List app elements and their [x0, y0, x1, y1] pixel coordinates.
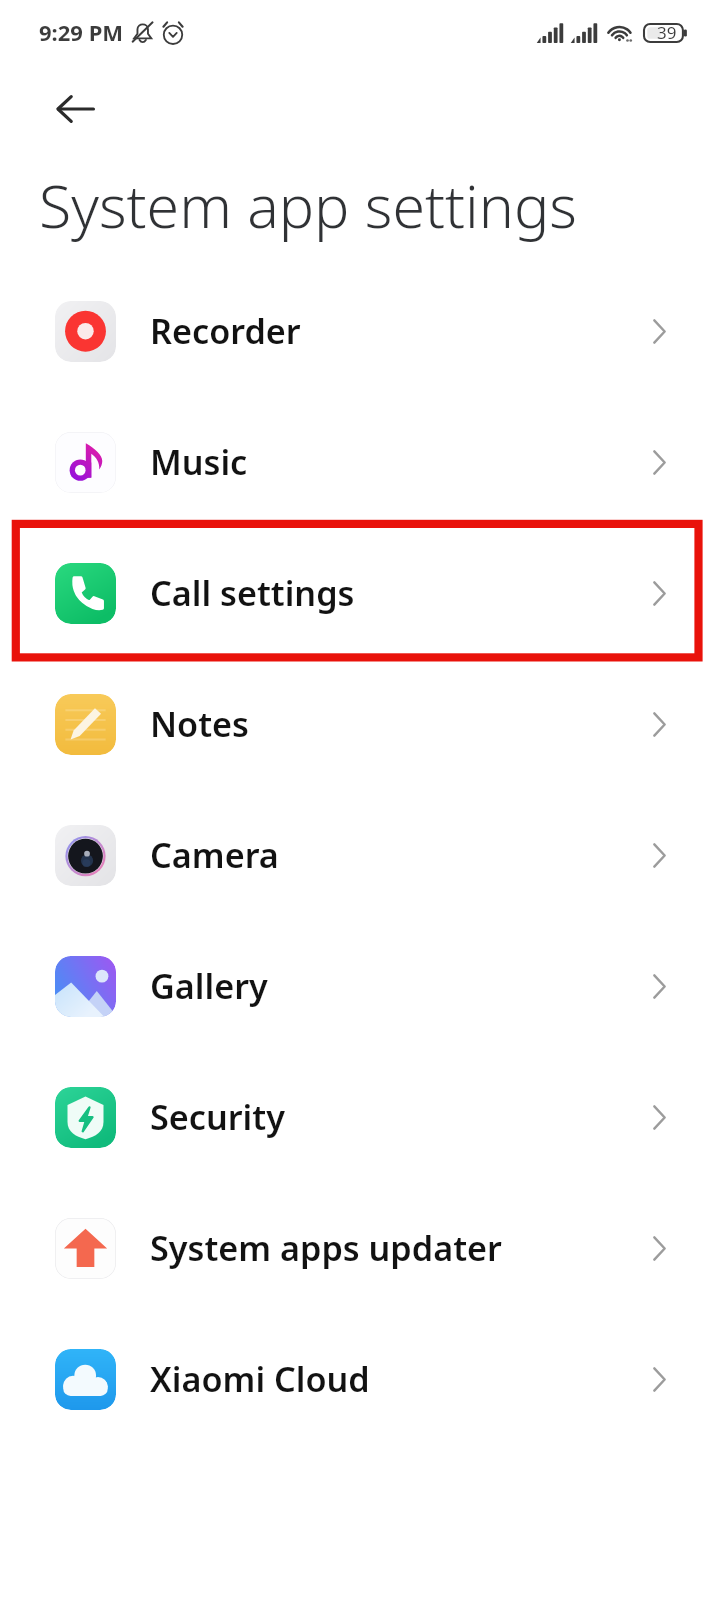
button[interactable]: Camera [0, 790, 720, 921]
staticText: Call settings [150, 569, 355, 616]
staticText: Xiaomi Cloud [150, 1355, 370, 1402]
staticText: Music [150, 438, 248, 485]
button[interactable]: Security [0, 1052, 720, 1183]
button[interactable]: System apps updater [0, 1183, 720, 1314]
staticText: System apps updater [150, 1224, 502, 1271]
button[interactable]: Call settings [0, 528, 720, 659]
button[interactable]: Recorder [0, 266, 720, 397]
staticText: System app settings [39, 165, 577, 245]
staticText: 9:29 PM [39, 17, 124, 47]
staticText: Camera [150, 831, 279, 878]
staticText: Security [150, 1093, 285, 1140]
staticText: 39 [657, 21, 677, 44]
button[interactable]: Music [0, 397, 720, 528]
staticText: Gallery [150, 962, 268, 1009]
staticText: Recorder [150, 307, 301, 354]
staticText: Notes [150, 700, 249, 747]
button[interactable]: Notes [0, 659, 720, 790]
button[interactable]: Gallery [0, 921, 720, 1052]
button[interactable]: Back [38, 72, 112, 146]
button[interactable]: Xiaomi Cloud [0, 1314, 720, 1445]
